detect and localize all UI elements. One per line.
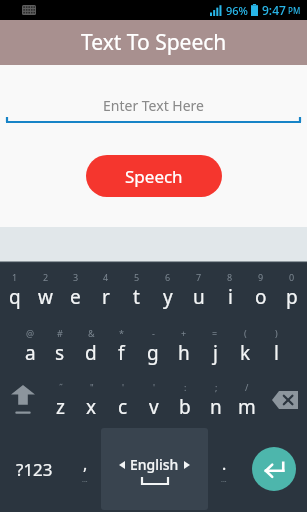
button[interactable]: " bbox=[76, 374, 107, 426]
staticText: 2 bbox=[43, 271, 49, 283]
button[interactable]: & bbox=[75, 319, 106, 374]
button[interactable]: ˝ bbox=[45, 374, 76, 426]
staticText: o bbox=[255, 284, 267, 310]
staticText: f bbox=[118, 340, 125, 366]
staticText: ; bbox=[215, 381, 218, 393]
staticText: r bbox=[102, 284, 110, 310]
button[interactable]: : bbox=[169, 374, 200, 426]
button[interactable]: ' bbox=[138, 374, 169, 426]
staticText: Speech bbox=[125, 165, 183, 188]
staticText: c bbox=[118, 394, 128, 420]
button[interactable]: 4 bbox=[90, 262, 121, 319]
button[interactable]: # bbox=[45, 319, 75, 374]
staticText: : bbox=[184, 381, 187, 393]
button[interactable]: - bbox=[137, 319, 168, 374]
staticText: 4 bbox=[103, 271, 109, 283]
staticText: k bbox=[240, 340, 251, 366]
button[interactable]: , bbox=[68, 426, 101, 512]
staticText: . bbox=[222, 453, 227, 475]
staticText: j bbox=[213, 340, 218, 366]
staticText: 0 bbox=[289, 271, 295, 283]
button[interactable]: 5 bbox=[121, 262, 152, 319]
button[interactable]: 9 bbox=[245, 262, 276, 319]
staticText: t bbox=[133, 284, 140, 310]
staticText: e bbox=[70, 284, 81, 310]
button[interactable]: ; bbox=[200, 374, 231, 426]
staticText: ˝ bbox=[59, 381, 63, 393]
staticText: u bbox=[193, 284, 205, 310]
button[interactable]: 0 bbox=[276, 262, 307, 319]
staticText: ?123 bbox=[16, 458, 53, 481]
button[interactable]: Shift bbox=[0, 374, 45, 426]
staticText: & bbox=[88, 327, 95, 339]
button[interactable]: = bbox=[199, 319, 230, 374]
staticText: n bbox=[210, 394, 222, 420]
button[interactable]: Enter Text Here bbox=[6, 93, 301, 117]
staticText: 8 bbox=[227, 271, 233, 283]
staticText: v bbox=[149, 394, 159, 420]
staticText: 6 bbox=[165, 271, 171, 283]
button[interactable]: Backspace bbox=[262, 374, 307, 426]
staticText: h bbox=[178, 340, 190, 366]
staticText: # bbox=[57, 327, 63, 339]
staticText: g bbox=[147, 340, 159, 366]
staticText: z bbox=[56, 394, 65, 420]
staticText: 7 bbox=[196, 271, 202, 283]
staticText: ' bbox=[122, 381, 125, 393]
staticText: w bbox=[38, 284, 53, 310]
staticText: = bbox=[212, 327, 218, 339]
staticText: Text To Speech bbox=[81, 28, 227, 57]
staticText: Enter Text Here bbox=[103, 96, 204, 115]
staticText: ) bbox=[275, 327, 278, 339]
staticText: 1 bbox=[12, 271, 18, 283]
button[interactable]: 1 bbox=[0, 262, 30, 319]
staticText: i bbox=[228, 284, 233, 310]
button[interactable]: ( bbox=[230, 319, 261, 374]
staticText: x bbox=[86, 394, 97, 420]
button[interactable]: * bbox=[106, 319, 137, 374]
staticText: 5 bbox=[134, 271, 140, 283]
button[interactable]: ) bbox=[261, 319, 292, 374]
staticText: b bbox=[179, 394, 191, 420]
staticText: q bbox=[9, 284, 21, 310]
staticText: m bbox=[238, 394, 256, 420]
staticText: 96% bbox=[226, 3, 248, 18]
staticText: 3 bbox=[73, 271, 79, 283]
staticText: d bbox=[85, 340, 97, 366]
button[interactable]: 8 bbox=[214, 262, 245, 319]
button[interactable]: 6 bbox=[152, 262, 183, 319]
button[interactable]: @ bbox=[15, 319, 45, 374]
staticText: l bbox=[274, 340, 279, 366]
staticText: PM bbox=[288, 5, 301, 16]
button[interactable]: / bbox=[231, 374, 262, 426]
button[interactable]: English bbox=[101, 428, 208, 510]
staticText: s bbox=[55, 340, 65, 366]
staticText: a bbox=[25, 340, 36, 366]
staticText: ' bbox=[153, 381, 156, 393]
staticText: 9 bbox=[258, 271, 264, 283]
button[interactable]: 3 bbox=[60, 262, 90, 319]
button[interactable]: ?123 bbox=[0, 426, 68, 512]
button[interactable]: . bbox=[208, 426, 240, 512]
staticText: ... bbox=[82, 475, 88, 485]
staticText: / bbox=[245, 381, 249, 393]
button[interactable]: 2 bbox=[30, 262, 60, 319]
button[interactable]: + bbox=[168, 319, 199, 374]
staticText: ... bbox=[221, 475, 227, 485]
staticText: - bbox=[152, 327, 155, 339]
staticText: p bbox=[286, 284, 298, 310]
button[interactable]: Speech bbox=[86, 155, 222, 197]
staticText: " bbox=[90, 381, 94, 393]
staticText: + bbox=[181, 327, 187, 339]
button[interactable]: ' bbox=[107, 374, 138, 426]
staticText: y bbox=[163, 284, 173, 310]
staticText: English bbox=[130, 455, 179, 474]
button[interactable]: Enter bbox=[252, 447, 296, 491]
staticText: @ bbox=[26, 327, 35, 339]
staticText: , bbox=[83, 453, 88, 475]
staticText: 9:47 bbox=[262, 2, 286, 18]
staticText: ( bbox=[244, 327, 247, 339]
staticText: * bbox=[119, 327, 124, 339]
button[interactable]: 7 bbox=[183, 262, 214, 319]
